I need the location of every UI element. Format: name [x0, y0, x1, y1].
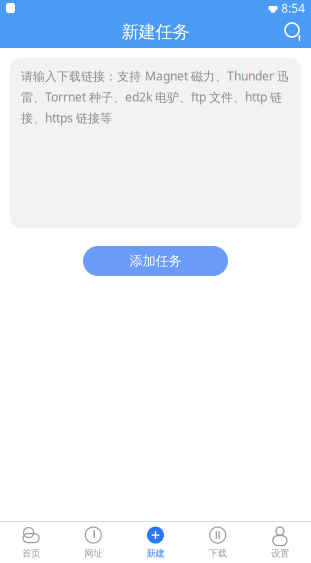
- staticText: 网址: [84, 548, 102, 559]
- button[interactable]: 设置: [249, 522, 311, 563]
- staticText: 请输入下载链接：支持 Magnet 磁力、Thunder 迅雷、Torrnet …: [21, 68, 289, 126]
- button[interactable]: Search: [277, 16, 311, 48]
- button[interactable]: 首页: [0, 522, 62, 563]
- staticText: 下载: [209, 548, 227, 559]
- staticText: 8:54: [281, 0, 305, 16]
- staticText: 新建: [146, 548, 164, 559]
- button[interactable]: 新建: [124, 522, 187, 563]
- staticText: 首页: [22, 548, 40, 559]
- staticText: 设置: [271, 548, 289, 559]
- button[interactable]: 下载: [187, 522, 249, 563]
- staticText: 新建任务: [121, 21, 189, 43]
- button[interactable]: 添加任务: [83, 246, 228, 276]
- button[interactable]: 网址: [62, 522, 124, 563]
- staticText: 添加任务: [129, 253, 181, 269]
